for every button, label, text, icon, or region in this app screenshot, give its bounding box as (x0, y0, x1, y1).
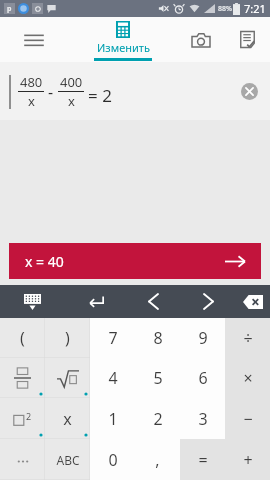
staticText: = 2 (88, 84, 112, 107)
staticText: Изменить (97, 40, 150, 55)
staticText: p (7, 4, 12, 14)
staticText: x = 40 (25, 252, 64, 271)
staticText: − (243, 408, 253, 430)
button[interactable]: Notes (224, 17, 270, 62)
button[interactable] (0, 358, 45, 398)
button[interactable]: ) (45, 318, 90, 358)
button[interactable]: ( (0, 318, 45, 358)
button[interactable]: , (135, 439, 180, 480)
button[interactable]: ÷ (225, 318, 270, 358)
button[interactable]: = (180, 439, 225, 480)
staticText: 3 (198, 408, 208, 430)
button[interactable]: x (45, 398, 90, 439)
staticText: 9 (198, 327, 208, 349)
button[interactable]: Next (181, 285, 236, 318)
button[interactable]: − (225, 398, 270, 439)
button[interactable]: x = 40 (9, 243, 261, 279)
button[interactable]: 2 (135, 398, 180, 439)
button[interactable]: 9 (180, 318, 225, 358)
button[interactable]: Backspace (236, 285, 270, 318)
staticText: 7 (108, 327, 118, 349)
staticText: ( (20, 327, 25, 349)
staticText: x (63, 408, 72, 430)
button[interactable]: 8 (135, 318, 180, 358)
button[interactable]: Menu (0, 17, 68, 62)
button[interactable]: Previous (126, 285, 181, 318)
button[interactable]: ABC (45, 439, 90, 480)
staticText: 2 (153, 408, 163, 430)
staticText: 480 (20, 73, 43, 91)
staticText: 400 (60, 73, 83, 91)
staticText: + (243, 449, 253, 471)
staticText: 5 (153, 367, 163, 389)
staticText: = (198, 449, 208, 471)
button[interactable]: 5 (135, 358, 180, 398)
button[interactable]: 0 (90, 439, 135, 480)
staticText: 0 (108, 449, 118, 471)
staticText: , (155, 449, 160, 471)
button[interactable] (45, 358, 90, 398)
staticText: x (68, 92, 75, 110)
staticText: 7:21 (244, 1, 266, 16)
staticText: ABC (56, 452, 80, 468)
staticText: 4 (108, 367, 118, 389)
staticText: ) (65, 327, 70, 349)
button[interactable]: Clear (238, 80, 260, 102)
button[interactable]: + (225, 439, 270, 480)
button[interactable] (0, 439, 45, 480)
staticText: 6 (198, 367, 208, 389)
button[interactable]: 4 (90, 358, 135, 398)
staticText: 1 (108, 408, 118, 430)
staticText: - (48, 81, 54, 103)
button[interactable]: 7 (90, 318, 135, 358)
staticText: × (243, 367, 253, 389)
button[interactable]: × (225, 358, 270, 398)
button[interactable]: Изменить (68, 17, 178, 62)
button[interactable]: 6 (180, 358, 225, 398)
button[interactable]: Camera (178, 17, 224, 62)
button[interactable]: 1 (90, 398, 135, 439)
button[interactable]: Enter (64, 285, 126, 318)
button[interactable]: Hide keyboard (0, 285, 64, 318)
staticText: 88% (218, 4, 232, 14)
button[interactable]: 3 (180, 398, 225, 439)
staticText: 2 (26, 410, 32, 422)
button[interactable]: 2 (0, 398, 45, 439)
staticText: 8 (153, 327, 163, 349)
staticText: x (28, 92, 35, 110)
staticText: ÷ (243, 327, 253, 349)
